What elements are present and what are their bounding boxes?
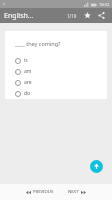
staticText: ____ they coming? xyxy=(15,40,61,47)
button[interactable]: Submit answer xyxy=(90,160,103,173)
staticText: are xyxy=(24,79,32,86)
button[interactable]: NEXT xyxy=(64,186,90,198)
button[interactable]: is xyxy=(15,55,101,66)
button[interactable]: am xyxy=(15,66,101,77)
button[interactable]: PREVIOUS xyxy=(22,186,58,198)
staticText: English Advanc... xyxy=(4,11,35,21)
button[interactable]: Bookmark xyxy=(81,9,94,22)
staticText: 10:12 xyxy=(99,2,110,7)
button[interactable]: do xyxy=(15,88,101,99)
staticText: NEXT xyxy=(68,189,79,195)
staticText: am xyxy=(24,68,32,75)
staticText: PREVIOUS xyxy=(33,189,54,195)
button[interactable]: are xyxy=(15,77,101,88)
staticText: 1/19 xyxy=(67,13,77,19)
staticText: is xyxy=(24,57,28,64)
staticText: do xyxy=(24,90,31,97)
button[interactable]: Share xyxy=(95,9,108,22)
